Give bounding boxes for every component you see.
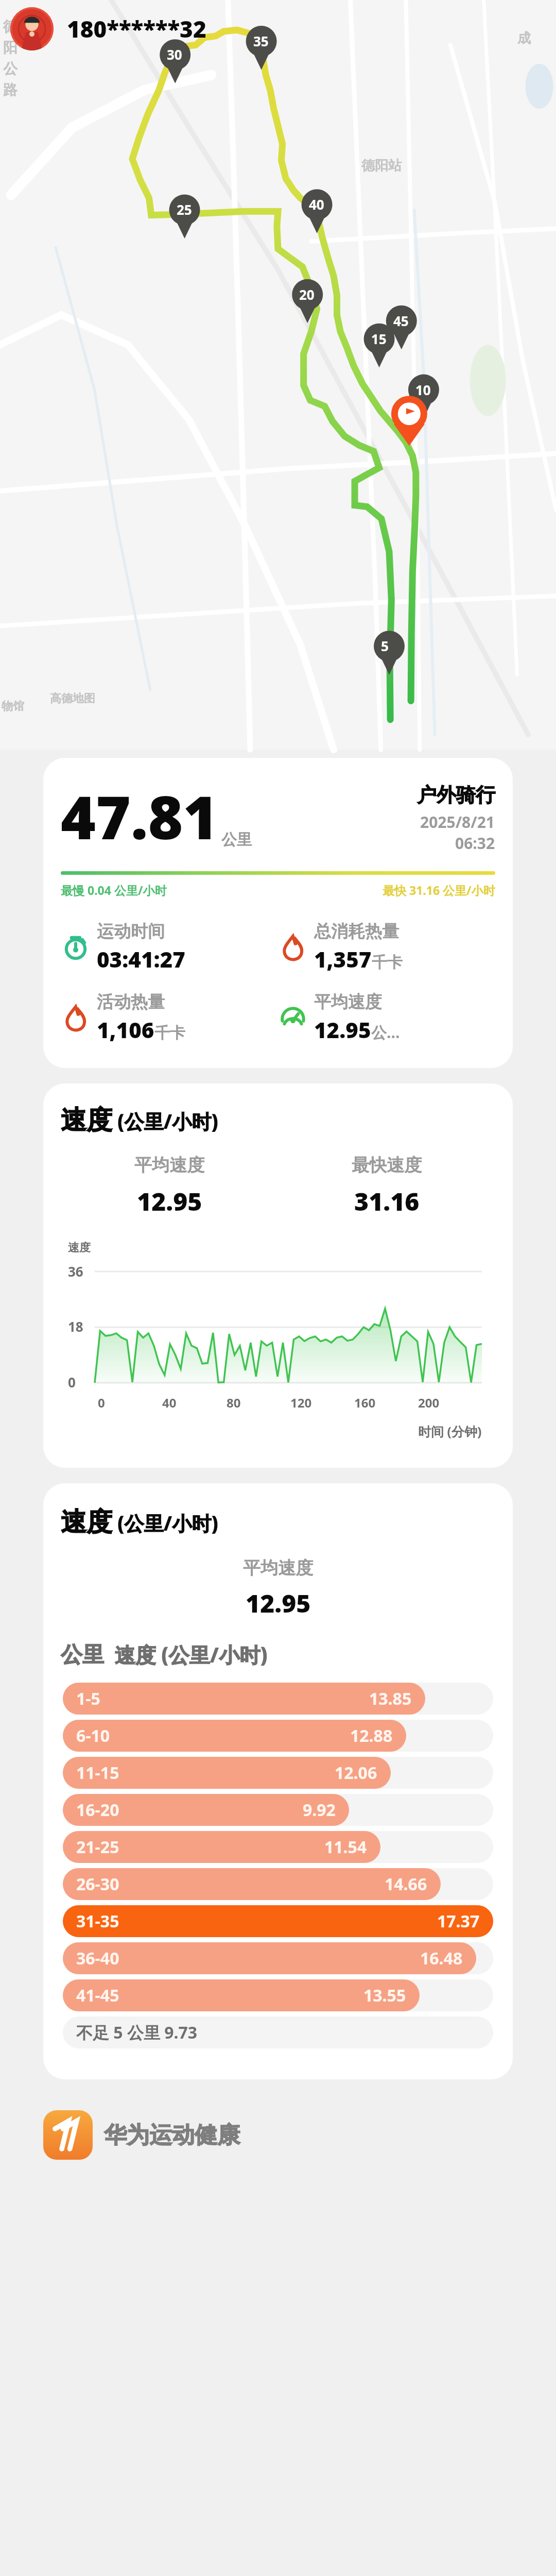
button[interactable]: 活动热量 — [61, 991, 278, 1044]
staticText: 36-40 — [76, 1947, 119, 1970]
staticText: 时间 (分钟) — [418, 1422, 482, 1440]
staticText: 40 — [162, 1394, 227, 1411]
staticText: 40 — [309, 195, 324, 213]
staticText: 0 — [68, 1373, 76, 1391]
staticText: 不足 5 公里 9.73 — [76, 2021, 198, 2044]
staticText: 平均速度 — [243, 1557, 313, 1579]
staticText: 公里 — [221, 830, 252, 850]
staticText: 13.55 — [363, 1984, 406, 2007]
staticText: 速度 — [61, 1104, 112, 1137]
staticText: 31-35 — [76, 1910, 119, 1933]
staticText: 35 — [253, 32, 269, 50]
staticText: 0 — [98, 1394, 162, 1411]
button[interactable]: 36-40 — [63, 1942, 493, 1974]
button[interactable]: 31-35 — [63, 1905, 493, 1937]
staticText: 最快 31.16 公里/小时 — [383, 882, 495, 898]
staticText: 最快速度 — [352, 1154, 422, 1176]
staticText: 200 — [418, 1394, 482, 1411]
button[interactable]: 26-30 — [63, 1868, 493, 1900]
staticText: 12.95 — [137, 1184, 202, 1218]
staticText: 25 — [177, 200, 192, 218]
staticText: 公… — [371, 1022, 400, 1043]
button[interactable]: 41-45 — [63, 1979, 493, 2011]
staticText: 11-15 — [76, 1761, 119, 1784]
staticText: 华为运动健康 — [104, 2121, 240, 2149]
staticText: 2025/8/21 — [420, 811, 495, 833]
staticText: 运动时间 — [97, 921, 165, 942]
staticText: 德 — [3, 18, 18, 36]
staticText: 户外骑行 — [417, 783, 495, 807]
staticText: 30 — [167, 45, 182, 63]
staticText: 06:32 — [455, 833, 495, 854]
staticText: 31.16 — [354, 1184, 420, 1218]
staticText: 36 — [68, 1262, 83, 1280]
staticText: 26-30 — [76, 1873, 119, 1895]
staticText: 高德地图 — [50, 691, 95, 706]
button[interactable]: 1-5 — [63, 1683, 493, 1715]
staticText: 18 — [68, 1317, 83, 1335]
staticText: 阳 — [3, 39, 18, 57]
staticText: 6-10 — [76, 1724, 110, 1747]
staticText: 45 — [393, 312, 409, 330]
button[interactable]: 21-25 — [63, 1831, 493, 1863]
staticText: 速度 — [61, 1506, 112, 1538]
staticText: 12.88 — [350, 1724, 393, 1747]
staticText: 最慢 0.04 公里/小时 — [61, 882, 167, 898]
staticText: 物馆 — [2, 699, 24, 714]
button[interactable]: 不足 5 公里 9.73 — [63, 2016, 493, 2048]
staticText: 180******32 — [67, 13, 206, 44]
staticText: 47.81 — [61, 775, 218, 857]
staticText: 12.06 — [335, 1761, 377, 1784]
staticText: 1-5 — [76, 1687, 100, 1710]
staticText: 成 — [517, 30, 531, 47]
staticText: 12.95 — [314, 1015, 371, 1044]
staticText: 16.48 — [420, 1947, 463, 1970]
staticText: 千卡 — [372, 953, 403, 972]
staticText: (公里/小时) — [112, 1510, 218, 1536]
button[interactable]: Huawei Health — [43, 2110, 556, 2160]
staticText: 1,357 — [314, 944, 372, 974]
staticText: 5 — [381, 637, 389, 655]
button[interactable]: 运动时间 — [61, 921, 278, 974]
staticText: 15 — [371, 330, 387, 348]
staticText: 41-45 — [76, 1984, 119, 2007]
staticText: 9.92 — [303, 1799, 336, 1821]
button[interactable]: User profile — [10, 7, 206, 50]
staticText: 17.37 — [437, 1910, 480, 1933]
button[interactable]: 11-15 — [63, 1757, 493, 1789]
staticText: 平均速度 — [314, 991, 382, 1013]
staticText: 03:41:27 — [97, 944, 185, 974]
staticText: 20 — [299, 285, 315, 303]
button[interactable]: 16-20 — [63, 1794, 493, 1826]
staticText: 1,106 — [97, 1015, 154, 1044]
staticText: 路 — [3, 81, 18, 99]
staticText: 12.95 — [246, 1586, 311, 1620]
staticText: 160 — [354, 1394, 418, 1411]
staticText: 活动热量 — [97, 991, 165, 1013]
staticText: 80 — [227, 1394, 290, 1411]
staticText: 总消耗热量 — [314, 921, 399, 942]
staticText: 120 — [290, 1394, 354, 1411]
button[interactable]: 平均速度 — [278, 991, 495, 1044]
staticText: 速度 (公里/小时) — [104, 1640, 268, 1669]
button[interactable]: 6-10 — [63, 1720, 493, 1752]
staticText: 平均速度 — [134, 1154, 204, 1176]
staticText: 16-20 — [76, 1799, 119, 1821]
staticText: 14.66 — [385, 1873, 427, 1895]
staticText: 11.54 — [324, 1836, 367, 1858]
staticText: 21-25 — [76, 1836, 119, 1858]
staticText: (公里/小时) — [112, 1108, 218, 1134]
staticText: 13.85 — [369, 1687, 412, 1710]
staticText: 10 — [415, 381, 431, 399]
staticText: 速度 — [68, 1241, 91, 1255]
button[interactable]: 总消耗热量 — [278, 921, 495, 974]
staticText: 德阳站 — [361, 157, 402, 174]
staticText: 公 — [3, 60, 18, 78]
staticText: 千卡 — [154, 1023, 185, 1043]
staticText: 公里 — [61, 1641, 104, 1669]
